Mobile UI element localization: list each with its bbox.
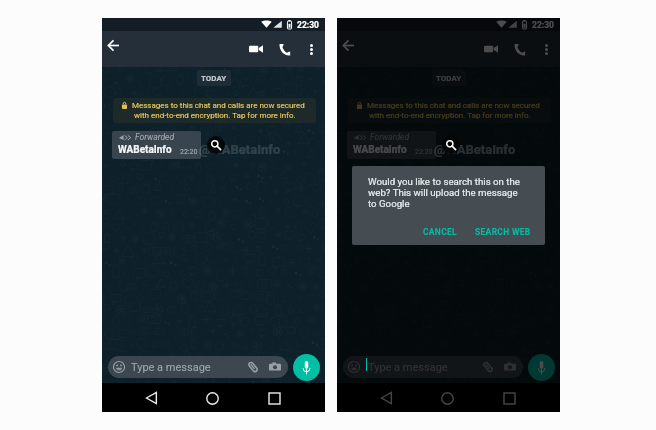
staticText: 22:30	[532, 20, 554, 30]
button[interactable]: Messages to this chat and calls are now …	[348, 98, 551, 123]
staticText: TODAY	[201, 74, 227, 83]
staticText: 22:20	[415, 148, 433, 156]
staticText: SEARCH WEB	[475, 227, 531, 237]
staticText: WABetaInfo	[353, 144, 407, 156]
staticText: Forwarded	[370, 132, 410, 142]
button[interactable]: TODAY	[432, 70, 466, 86]
button[interactable]: Video call	[244, 38, 267, 60]
button[interactable]: TODAY	[197, 70, 231, 86]
staticText: with end-to-end encryption. Tap for more…	[134, 111, 296, 120]
button[interactable]: Home	[200, 386, 224, 410]
staticText: Type a message	[368, 361, 448, 374]
button[interactable]: Video call	[479, 38, 502, 60]
button[interactable]: Back	[139, 386, 163, 410]
staticText: Forwarded	[135, 132, 175, 142]
button[interactable]: CANCEL	[418, 223, 463, 241]
button[interactable]: Back	[102, 34, 124, 56]
button[interactable]: Record voice message	[528, 354, 555, 381]
staticText: Would you like to search this on the web…	[368, 176, 526, 209]
button[interactable]: Record voice message	[293, 354, 320, 381]
staticText: Messages to this chat and calls are now …	[367, 101, 540, 110]
button[interactable]: More options	[300, 38, 322, 60]
button[interactable]: Search	[207, 136, 225, 154]
button[interactable]: Forwarded	[112, 131, 201, 159]
button[interactable]: Call	[273, 38, 296, 60]
button[interactable]: Back	[337, 34, 359, 56]
button[interactable]: Back	[374, 386, 398, 410]
staticText: 22:20	[180, 148, 198, 156]
button[interactable]: Forwarded	[347, 131, 436, 159]
staticText: TODAY	[436, 74, 462, 83]
staticText: WABetaInfo	[118, 144, 172, 156]
button[interactable]: Home	[435, 386, 459, 410]
button[interactable]: More options	[535, 38, 557, 60]
button[interactable]: Recent apps	[262, 386, 286, 410]
button[interactable]: Type a message	[343, 356, 523, 378]
staticText: Type a message	[131, 361, 211, 374]
staticText: @WABetaInfo	[199, 142, 281, 157]
button[interactable]: Messages to this chat and calls are now …	[113, 98, 316, 123]
button[interactable]: Call	[508, 38, 531, 60]
staticText: Messages to this chat and calls are now …	[132, 101, 305, 110]
staticText: CANCEL	[423, 227, 458, 237]
button[interactable]: SEARCH WEB	[470, 223, 536, 241]
button[interactable]: Type a message	[108, 356, 288, 378]
staticText: 22:30	[297, 20, 319, 30]
staticText: with end-to-end encryption. Tap for more…	[369, 111, 531, 120]
button[interactable]: Recent apps	[497, 386, 521, 410]
button[interactable]: Search	[442, 136, 460, 154]
staticText: @WABetaInfo	[434, 142, 516, 157]
